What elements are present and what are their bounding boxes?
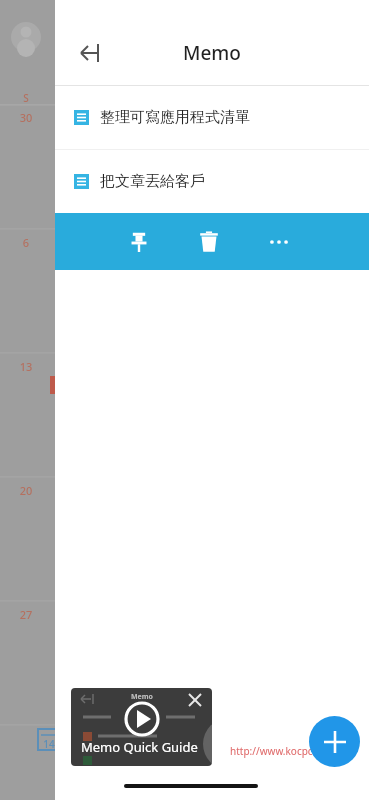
staticText: S xyxy=(12,91,40,105)
button[interactable]: Back xyxy=(71,33,111,73)
staticText: 整理可寫應用程式清單 xyxy=(100,108,250,127)
staticText: http://www.kocpc.com.tw xyxy=(230,744,350,758)
staticText: 13 xyxy=(12,359,40,374)
staticText: 14 xyxy=(35,737,63,751)
staticText: 把文章丟給客戶 xyxy=(100,172,205,191)
button[interactable]: Delete xyxy=(185,218,233,266)
staticText: Memo Quick Guide xyxy=(81,738,198,756)
button[interactable]: Add memo xyxy=(309,716,360,767)
button[interactable]: Pin xyxy=(115,218,163,266)
staticText: Memo xyxy=(183,40,241,66)
button[interactable]: Play video xyxy=(124,701,160,737)
staticText: 6 xyxy=(12,235,40,250)
staticText: Memo xyxy=(131,692,153,702)
staticText: 電腦王阿達 xyxy=(230,716,355,747)
staticText: 27 xyxy=(12,607,40,622)
staticText: 20 xyxy=(12,483,40,498)
button[interactable]: 把文章丟給客戶 xyxy=(55,150,369,213)
button[interactable]: More options xyxy=(255,218,303,266)
button[interactable]: 整理可寫應用程式清單 xyxy=(55,86,369,149)
staticText: 30 xyxy=(12,110,40,125)
button[interactable]: Memo xyxy=(71,688,212,766)
